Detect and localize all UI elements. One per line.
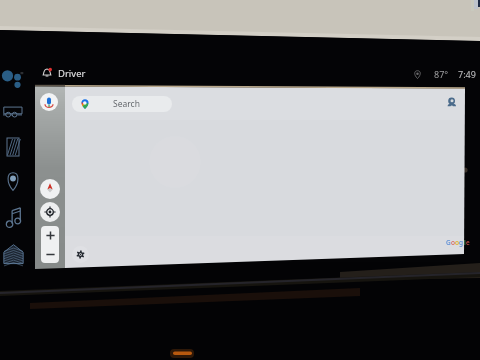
button[interactable]: Home	[3, 243, 24, 264]
staticText: e	[466, 238, 470, 247]
staticText: g	[459, 238, 464, 247]
button[interactable]: Voice search	[40, 93, 58, 111]
staticText: G	[446, 238, 451, 247]
button[interactable]: Zoom out	[41, 245, 59, 263]
button[interactable]: Compass	[40, 179, 60, 199]
button[interactable]: Driver	[42, 65, 86, 81]
button[interactable]: Door	[6, 137, 20, 157]
button[interactable]: Location	[413, 67, 476, 81]
other: Location	[413, 70, 422, 79]
staticText: Search	[113, 98, 140, 110]
button[interactable]: Search	[72, 96, 172, 112]
staticText: l	[464, 238, 466, 247]
button[interactable]: Media	[6, 207, 23, 227]
button[interactable]: Zoom in	[41, 226, 59, 245]
staticText: o	[455, 238, 459, 247]
button[interactable]: Navigation	[6, 172, 20, 191]
staticText: 87°	[434, 68, 449, 80]
button[interactable]: Account	[446, 97, 458, 109]
staticText: o	[451, 238, 455, 247]
button[interactable]: Settings	[72, 246, 89, 263]
staticText: Driver	[58, 67, 86, 80]
button[interactable]: My location	[40, 202, 60, 222]
button[interactable]: Vehicle	[3, 104, 23, 118]
staticText: 7:49	[458, 68, 476, 80]
button[interactable]: Assistant	[0, 62, 28, 90]
